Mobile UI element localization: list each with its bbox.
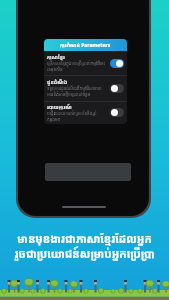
staticText: រូចជាប្រយោជន៍សម្រាប់អ្នកប្រើប្រា [14,246,155,261]
staticText: ភាសាខ្មែរ [47,54,65,61]
staticText: ប្រើភាសាខ្មែរក្នុងការប្រើប្រាស់កម្មវិធីន… [47,61,108,72]
button[interactable]: ភាសាខ្មែរ [44,51,127,75]
button[interactable]: Toggle setting [110,84,124,93]
staticText: ទទួលការជូនដំណឹងពីកម្មវិធីនៅពេលមានព័ត៌មាន… [47,86,108,97]
button[interactable]: Toggle setting [110,108,124,117]
staticText: បង្កើតរបាយការណ៍ប្រចាខែនិងឆ្នាំកន្លងមក [47,111,108,122]
staticText: ការកំណត់ Parameters [60,42,111,49]
button[interactable]: Toggle setting [110,59,124,68]
staticText: របាយការណ៍ [47,104,72,111]
button[interactable]: របាយការណ៍ [44,101,127,124]
button[interactable]: ជូនដំណឹង [44,75,127,101]
staticText: ជូនដំណឹង [47,79,68,86]
staticText: មានមុខងារជាភាសាខ្មែរដែលអ្នក [17,231,152,246]
